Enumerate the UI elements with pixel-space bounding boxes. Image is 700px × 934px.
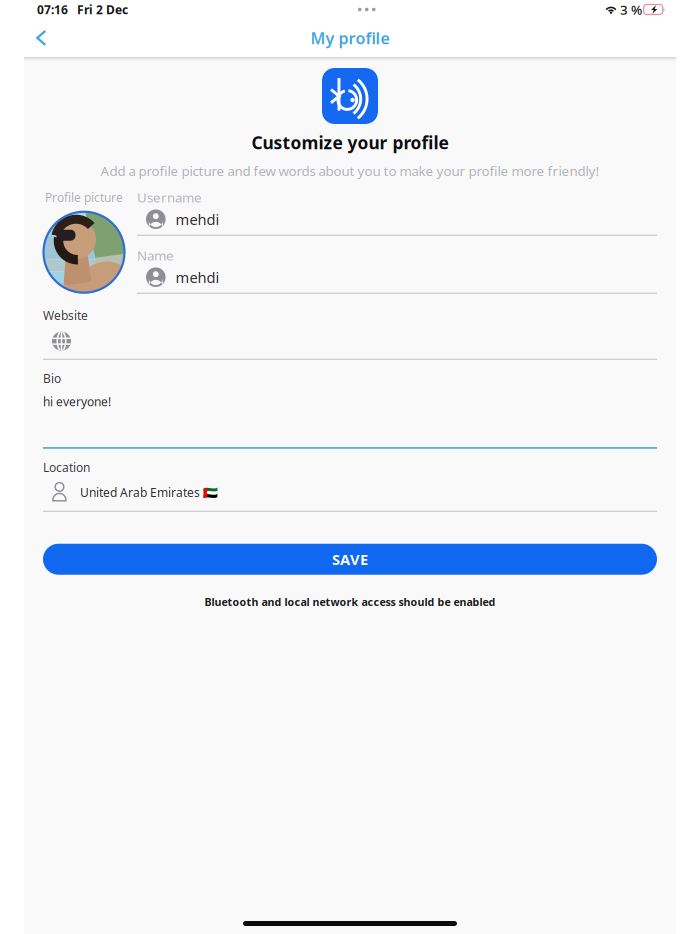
staticText: Name (137, 246, 174, 264)
staticText: 07:16 (37, 1, 68, 17)
staticText: hi everyone! (43, 394, 111, 410)
staticText: Bio (43, 370, 61, 386)
staticText: Customize your profile (251, 131, 448, 154)
button[interactable]: SAVE (43, 544, 657, 575)
staticText: Fri 2 Dec (77, 1, 128, 17)
staticText: United Arab Emirates 🇦🇪 (80, 484, 218, 500)
button[interactable]: Back (24, 21, 59, 55)
staticText: mehdi (176, 267, 220, 287)
staticText: Location (43, 459, 90, 475)
staticText: Website (43, 307, 88, 323)
staticText: SAVE (332, 549, 368, 569)
staticText: My profile (310, 27, 389, 49)
staticText: Username (137, 188, 202, 206)
staticText: mehdi (176, 209, 220, 229)
staticText: Add a profile picture and few words abou… (100, 162, 599, 180)
staticText: Bluetooth and local network access shoul… (204, 595, 495, 609)
staticText: Profile picture (45, 189, 123, 205)
staticText: 3 % (620, 1, 642, 18)
